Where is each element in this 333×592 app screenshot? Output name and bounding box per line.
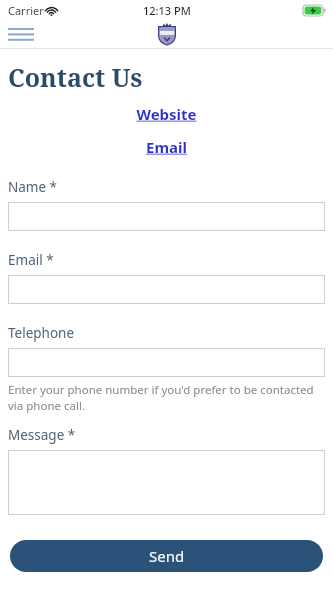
button[interactable]: Email	[8, 137, 325, 157]
button[interactable]: Name input field	[8, 202, 325, 231]
button[interactable]: Open navigation menu	[4, 22, 38, 46]
staticText: Enter your phone number if you'd prefer …	[8, 382, 325, 413]
staticText: Name *	[8, 178, 58, 196]
staticText: Telephone	[8, 324, 75, 342]
button[interactable]: Telephone input field	[8, 348, 325, 377]
button[interactable]: Website	[8, 104, 325, 124]
staticText: Carrier	[8, 3, 44, 18]
staticText: Contact Us	[8, 60, 143, 94]
staticText: Email	[146, 137, 187, 157]
button[interactable]: Home	[155, 22, 179, 46]
staticText: 12:13 PM	[143, 3, 191, 18]
staticText: Website	[136, 104, 197, 124]
staticText: Message *	[8, 426, 76, 444]
button[interactable]: Message input field	[8, 450, 325, 515]
button[interactable]: Send	[10, 540, 323, 572]
staticText: Send	[149, 546, 185, 566]
button[interactable]: Email input field	[8, 275, 325, 304]
staticText: Email *	[8, 251, 54, 269]
